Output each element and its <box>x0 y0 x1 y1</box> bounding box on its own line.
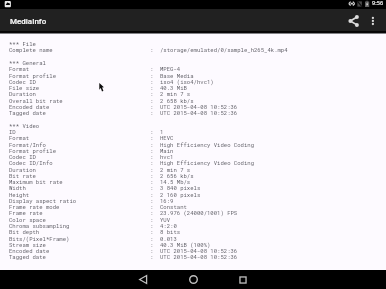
staticText: Codec ID <box>9 78 36 85</box>
staticText: Overall bit rate <box>9 97 63 104</box>
staticText: : <box>150 159 154 166</box>
staticText: : <box>150 178 154 185</box>
staticText: : <box>150 128 154 135</box>
staticText: 2 min 7 s <box>160 166 191 173</box>
button[interactable]: More options <box>367 9 380 31</box>
staticText: *** General <box>9 59 46 66</box>
staticText: Format profile <box>9 72 56 79</box>
staticText: : <box>150 253 154 260</box>
staticText: : <box>150 166 154 173</box>
staticText: : <box>150 90 154 97</box>
staticText: hvc1 <box>160 153 174 160</box>
staticText: Frame rate <box>9 209 43 216</box>
staticText: : <box>150 153 154 160</box>
staticText: 9:56 <box>372 0 384 7</box>
staticText: : <box>150 241 154 248</box>
staticText: Width <box>9 184 26 191</box>
staticText: Bit depth <box>9 228 40 235</box>
staticText: Format <box>9 65 30 72</box>
staticText: UTC 2015-04-08 10:52:36 <box>160 253 238 260</box>
staticText: : <box>150 46 154 53</box>
staticText: Format profile <box>9 147 56 154</box>
staticText: Chroma subsampling <box>9 222 70 229</box>
staticText: : <box>150 197 154 204</box>
staticText: High Efficiency Video Coding <box>160 141 254 148</box>
staticText: 3 840 pixels <box>160 184 201 191</box>
staticText: Tagged date <box>9 253 46 260</box>
staticText: MediaInfo <box>10 17 47 26</box>
staticText: : <box>150 203 154 210</box>
staticText: : <box>150 247 154 254</box>
staticText: /storage/emulated/0/sample_h265_4k.mp4 <box>160 46 288 53</box>
staticText: : <box>150 109 154 116</box>
staticText: : <box>150 65 154 72</box>
staticText: Duration <box>9 166 36 173</box>
staticText: Main <box>160 147 174 154</box>
staticText: High Efficiency Video Coding <box>160 159 254 166</box>
staticText: Bit rate <box>9 172 36 179</box>
staticText: Bits/(Pixel*Frame) <box>9 235 70 242</box>
staticText: Color space <box>9 216 46 223</box>
button[interactable]: Recents <box>233 270 253 289</box>
staticText: Format/Info <box>9 141 46 148</box>
button[interactable]: Back <box>133 270 153 289</box>
staticText: *** File <box>9 40 36 47</box>
staticText: YUV <box>160 216 171 223</box>
staticText: MPEG-4 <box>160 65 181 72</box>
staticText: 1 <box>160 128 164 135</box>
staticText: 2 658 kb/s <box>160 97 194 104</box>
staticText: : <box>150 222 154 229</box>
staticText: : <box>150 78 154 85</box>
staticText: : <box>150 235 154 242</box>
staticText: : <box>150 191 154 198</box>
staticText: 2 min 7 s <box>160 90 191 97</box>
staticText: 40.3 MiB <box>160 84 187 91</box>
button[interactable]: Home <box>183 270 203 289</box>
staticText: UTC 2015-04-08 10:52:36 <box>160 109 238 116</box>
staticText: : <box>150 216 154 223</box>
staticText: Constant <box>160 203 187 210</box>
staticText: Tagged date <box>9 109 46 116</box>
staticText: Display aspect ratio <box>9 197 77 204</box>
staticText: Duration <box>9 90 36 97</box>
staticText: : <box>150 84 154 91</box>
staticText: 2 160 pixels <box>160 191 201 198</box>
staticText: 0.013 <box>160 235 177 242</box>
staticText: 40.3 MiB (100%) <box>160 241 211 248</box>
staticText: 4:2:0 <box>160 222 177 229</box>
staticText: Stream size <box>9 241 46 248</box>
staticText: Codec ID/Info <box>9 159 53 166</box>
staticText: Maximum bit rate <box>9 178 63 185</box>
staticText: ID <box>9 128 16 135</box>
staticText: : <box>150 141 154 148</box>
staticText: : <box>150 72 154 79</box>
staticText: HEVC <box>160 134 174 141</box>
staticText: : <box>150 147 154 154</box>
staticText: 8 bits <box>160 228 181 235</box>
staticText: Codec ID <box>9 153 36 160</box>
staticText: 2 656 kb/s <box>160 172 194 179</box>
staticText: Base Media <box>160 72 194 79</box>
staticText: 16:9 <box>160 197 174 204</box>
staticText: Format <box>9 134 30 141</box>
staticText: : <box>150 97 154 104</box>
staticText: 23.976 (24000/1001) FPS <box>160 209 238 216</box>
staticText: : <box>150 184 154 191</box>
staticText: Height <box>9 191 30 198</box>
staticText: 14.5 Mb/s <box>160 178 191 185</box>
staticText: UTC 2015-04-08 10:52:36 <box>160 103 238 110</box>
staticText: Encoded date <box>9 247 50 254</box>
staticText: Frame rate mode <box>9 203 60 210</box>
staticText: : <box>150 103 154 110</box>
staticText: File size <box>9 84 40 91</box>
staticText: Encoded date <box>9 103 50 110</box>
staticText: : <box>150 172 154 179</box>
staticText: : <box>150 134 154 141</box>
staticText: : <box>150 228 154 235</box>
staticText: *** Video <box>9 122 40 129</box>
staticText: Complete name <box>9 46 53 53</box>
staticText: UTC 2015-04-08 10:52:36 <box>160 247 238 254</box>
staticText: : <box>150 209 154 216</box>
button[interactable]: Share <box>343 9 367 31</box>
staticText: iso4 (iso4/hvc1) <box>160 78 214 85</box>
